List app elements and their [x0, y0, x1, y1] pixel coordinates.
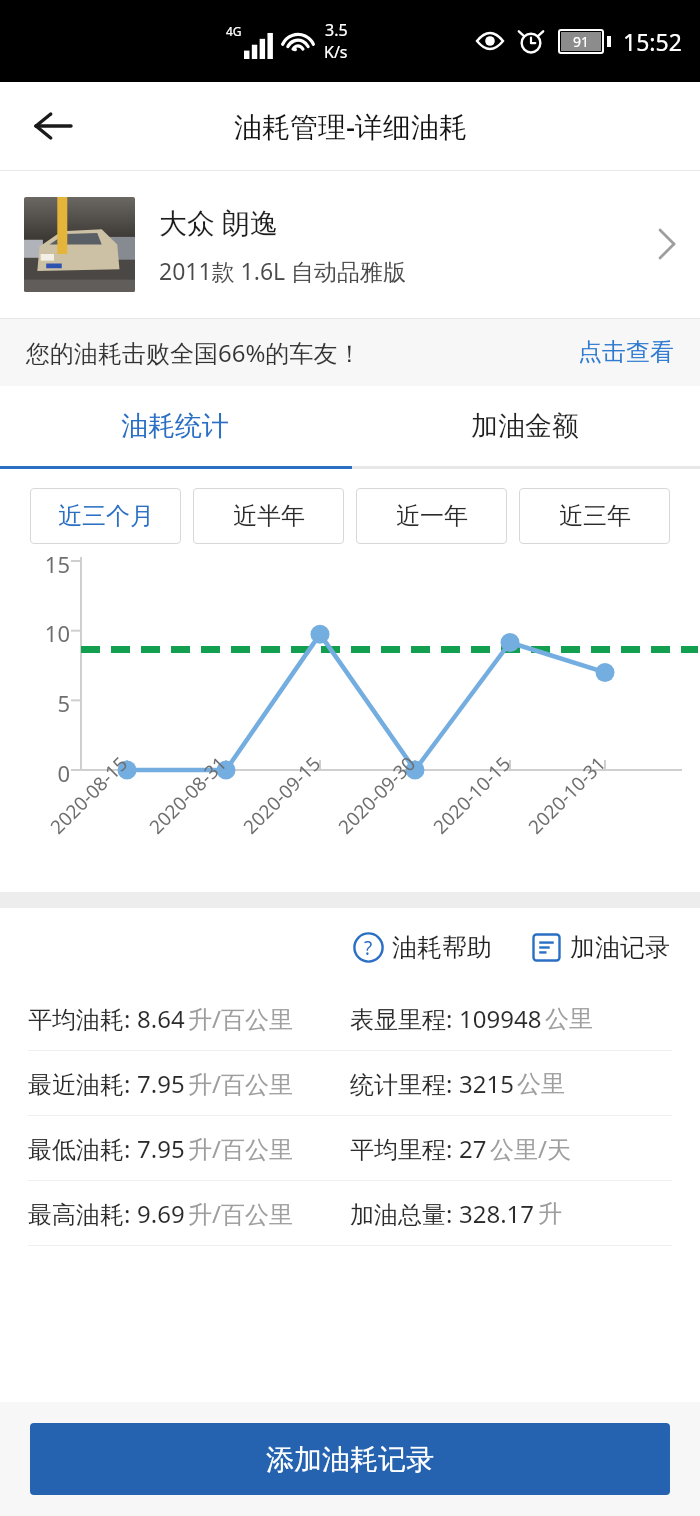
staticText: 平均里程: — [350, 1132, 459, 1165]
staticText: 3.5 — [325, 19, 348, 41]
staticText: 2020-10-31 — [522, 750, 612, 840]
staticText: 加油金额 — [471, 409, 579, 443]
staticText: 10 — [28, 618, 70, 648]
staticText: 公里 — [545, 1004, 593, 1034]
staticText: 升/百公里 — [188, 1197, 293, 1230]
staticText: 近半年 — [233, 501, 305, 531]
staticText: 最高油耗: — [28, 1197, 137, 1230]
staticText: 最低油耗: — [28, 1132, 137, 1165]
staticText: 添加油耗记录 — [266, 1442, 434, 1477]
staticText: 7.95 — [137, 1067, 185, 1100]
button[interactable]: 大众 朗逸 — [0, 170, 700, 318]
staticText: 油耗统计 — [121, 409, 229, 443]
staticText: 8.64 — [137, 1002, 185, 1035]
staticText: 109948 — [459, 1002, 542, 1035]
button[interactable]: 您的油耗击败全国66%的车友！ — [0, 318, 700, 386]
staticText: 升/百公里 — [188, 1002, 293, 1035]
button[interactable]: 近一年 — [356, 488, 507, 544]
staticText: 5 — [28, 688, 70, 718]
staticText: 15:52 — [623, 26, 682, 57]
staticText: 升 — [538, 1199, 562, 1229]
staticText: 2020-08-31 — [143, 750, 233, 840]
staticText: 统计里程: — [350, 1067, 459, 1100]
staticText: 7.95 — [137, 1132, 185, 1165]
staticText: 27 — [459, 1132, 487, 1165]
staticText: 点击查看 — [578, 337, 674, 367]
staticText: 9.69 — [137, 1197, 185, 1230]
staticText: 公里/天 — [490, 1132, 571, 1165]
staticText: 3215 — [459, 1067, 514, 1100]
staticText: 2020-08-15 — [44, 750, 134, 840]
staticText: 15 — [28, 549, 70, 579]
staticText: 您的油耗击败全国66%的车友！ — [26, 336, 362, 369]
staticText: 大众 朗逸 — [159, 203, 279, 241]
staticText: 2020-09-15 — [237, 750, 327, 840]
button[interactable]: Back — [24, 97, 82, 155]
staticText: 油耗帮助 — [392, 932, 492, 963]
staticText: 最近油耗: — [28, 1067, 137, 1100]
staticText: 升/百公里 — [188, 1132, 293, 1165]
staticText: 表显里程: — [350, 1002, 459, 1035]
button[interactable]: 加油金额 — [350, 386, 700, 466]
staticText: 328.17 — [459, 1197, 535, 1230]
button[interactable]: 添加油耗记录 — [30, 1423, 670, 1495]
staticText: 公里 — [517, 1069, 565, 1099]
button[interactable]: 加油记录 — [528, 926, 674, 969]
button[interactable]: ? — [349, 926, 496, 969]
staticText: 2011款 1.6L 自动品雅版 — [159, 255, 407, 286]
staticText: 平均油耗: — [28, 1002, 137, 1035]
button[interactable]: 近半年 — [193, 488, 344, 544]
staticText: 近三年 — [559, 501, 631, 531]
staticText: 升/百公里 — [188, 1067, 293, 1100]
staticText: K/s — [324, 41, 348, 63]
staticText: ? — [364, 935, 373, 961]
other: Open car details — [658, 228, 676, 260]
staticText: 2020-10-15 — [427, 750, 517, 840]
staticText: 近一年 — [396, 501, 468, 531]
staticText: 0 — [28, 758, 70, 788]
staticText: 4G — [226, 23, 242, 39]
button[interactable]: 近三个月 — [30, 488, 181, 544]
button[interactable]: 油耗统计 — [0, 386, 350, 466]
staticText: 加油记录 — [570, 932, 670, 963]
staticText: 近三个月 — [58, 501, 154, 531]
button[interactable]: 近三年 — [519, 488, 670, 544]
staticText: 加油总量: — [350, 1197, 459, 1230]
staticText: 2020-09-30 — [332, 750, 422, 840]
staticText: 91 — [573, 32, 590, 51]
staticText: 油耗管理-详细油耗 — [234, 107, 467, 145]
